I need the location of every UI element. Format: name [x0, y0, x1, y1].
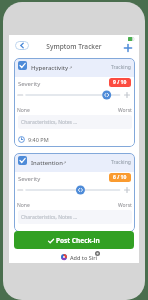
staticText: Severity [18, 80, 41, 88]
button[interactable]: Back [15, 41, 29, 50]
button[interactable]: Post Check-in [14, 231, 134, 249]
staticText: None [17, 107, 30, 114]
button[interactable]: Add [122, 42, 134, 54]
staticText: Add to Siri [70, 254, 98, 261]
staticText: ↗ [63, 160, 67, 165]
staticText: Characteristics, Notes ... [21, 119, 78, 126]
staticText: Worst [118, 107, 132, 114]
staticText: ↗ [69, 65, 73, 70]
staticText: 9:40 PM [28, 136, 49, 143]
staticText: Severity [18, 175, 41, 183]
staticText: None [17, 202, 30, 209]
button[interactable]: Add to Siri [61, 253, 98, 261]
button[interactable]: Characteristics, Notes ... [18, 115, 132, 129]
staticText: Tracking [111, 64, 131, 71]
staticText: 6 / 10 [113, 174, 127, 181]
staticText: Hyperactivity [31, 64, 69, 72]
staticText: Tracking [111, 159, 131, 166]
staticText: Symptom Tracker [46, 42, 102, 51]
button[interactable]: Inattention [14, 153, 135, 232]
button[interactable]: Characteristics, Notes ... [18, 210, 132, 224]
button[interactable]: Hyperactivity [14, 58, 135, 147]
button[interactable]: 9:40 PM [18, 136, 49, 143]
staticText: Inattention [31, 159, 63, 167]
staticText: Post Check-in [56, 236, 100, 245]
staticText: Worst [118, 202, 132, 209]
staticText: 9 / 10 [113, 79, 127, 86]
staticText: Characteristics, Notes ... [21, 214, 78, 221]
